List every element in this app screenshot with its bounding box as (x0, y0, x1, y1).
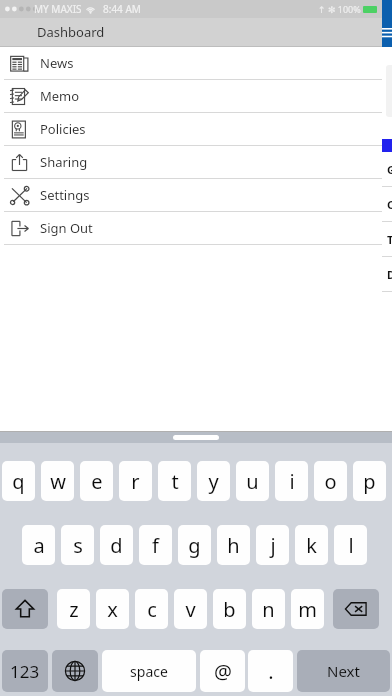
button[interactable]: 123 (2, 650, 48, 692)
button[interactable]: Settings (0, 179, 382, 212)
button[interactable]: News (0, 47, 382, 80)
button[interactable]: c (135, 589, 168, 629)
staticText: C (387, 197, 392, 212)
staticText: News (40, 54, 74, 72)
button[interactable]: g (178, 525, 211, 565)
staticText: p (363, 468, 376, 495)
staticText: n (262, 596, 275, 623)
button[interactable]: q (2, 461, 35, 501)
staticText: q (12, 468, 25, 495)
button[interactable]: h (217, 525, 250, 565)
staticText: Policies (40, 120, 86, 138)
button[interactable]: a (22, 525, 55, 565)
button[interactable]: m (291, 589, 324, 629)
button[interactable]: s (61, 525, 94, 565)
button[interactable]: l (334, 525, 367, 565)
staticText: h (227, 532, 240, 559)
staticText: c (147, 596, 157, 623)
staticText: s (73, 532, 83, 559)
staticText: l (348, 532, 354, 559)
staticText: Memo (40, 87, 80, 105)
staticText: Sign Out (40, 219, 93, 237)
staticText: Next (327, 661, 360, 681)
staticText: g (188, 532, 201, 559)
button[interactable]: Memo (0, 80, 382, 113)
staticText: . (268, 658, 274, 685)
staticText: x (107, 596, 118, 623)
staticText: w (50, 468, 66, 495)
staticText: v (185, 596, 196, 623)
button[interactable]: Next (297, 650, 390, 692)
button[interactable]: i (275, 461, 308, 501)
staticText: MY MAXIS (34, 2, 82, 16)
button[interactable]: Change keyboard (52, 650, 98, 692)
button[interactable]: b (213, 589, 246, 629)
button[interactable]: o (314, 461, 347, 501)
button[interactable]: e (80, 461, 113, 501)
button[interactable]: Sharing (0, 146, 382, 179)
staticText: G (387, 162, 392, 177)
staticText: i (289, 468, 295, 495)
staticText: o (324, 468, 337, 495)
staticText: e (91, 468, 103, 495)
button[interactable]: r (119, 461, 152, 501)
button[interactable]: j (256, 525, 289, 565)
staticText: y (208, 468, 219, 495)
button[interactable]: d (100, 525, 133, 565)
staticText: 123 (10, 660, 40, 683)
staticText: m (298, 596, 317, 623)
button[interactable]: Menu (382, 18, 392, 47)
button[interactable]: k (295, 525, 328, 565)
staticText: Settings (40, 186, 90, 204)
button[interactable]: f (139, 525, 172, 565)
button[interactable]: . (248, 650, 293, 692)
staticText: a (33, 532, 45, 559)
staticText: Sharing (40, 153, 88, 171)
button[interactable]: z (57, 589, 90, 629)
staticText: @ (214, 658, 232, 685)
staticText: 8:44 AM (103, 2, 141, 16)
staticText: z (69, 596, 79, 623)
staticText: D (387, 267, 392, 282)
button[interactable]: x (96, 589, 129, 629)
button[interactable]: n (252, 589, 285, 629)
button[interactable]: u (236, 461, 269, 501)
button[interactable]: space (102, 650, 196, 692)
staticText: f (152, 532, 159, 559)
button[interactable]: Sign Out (0, 212, 382, 245)
button[interactable]: Policies (0, 113, 382, 146)
button[interactable]: v (174, 589, 207, 629)
staticText: space (130, 662, 168, 681)
button[interactable]: y (197, 461, 230, 501)
staticText: d (110, 532, 123, 559)
button[interactable]: w (41, 461, 74, 501)
button[interactable]: Backspace (333, 589, 379, 629)
staticText: j (270, 532, 276, 559)
button[interactable]: p (353, 461, 386, 501)
button[interactable]: @ (200, 650, 245, 692)
button[interactable]: t (158, 461, 191, 501)
staticText: Dashboard (37, 23, 105, 41)
staticText: k (306, 532, 317, 559)
staticText: t (171, 468, 179, 495)
staticText: r (131, 468, 140, 495)
staticText: T (387, 232, 392, 247)
staticText: ↑ ✻ 100% (318, 3, 361, 15)
staticText: u (246, 468, 259, 495)
staticText: b (223, 596, 236, 623)
button[interactable]: Shift (2, 589, 48, 629)
